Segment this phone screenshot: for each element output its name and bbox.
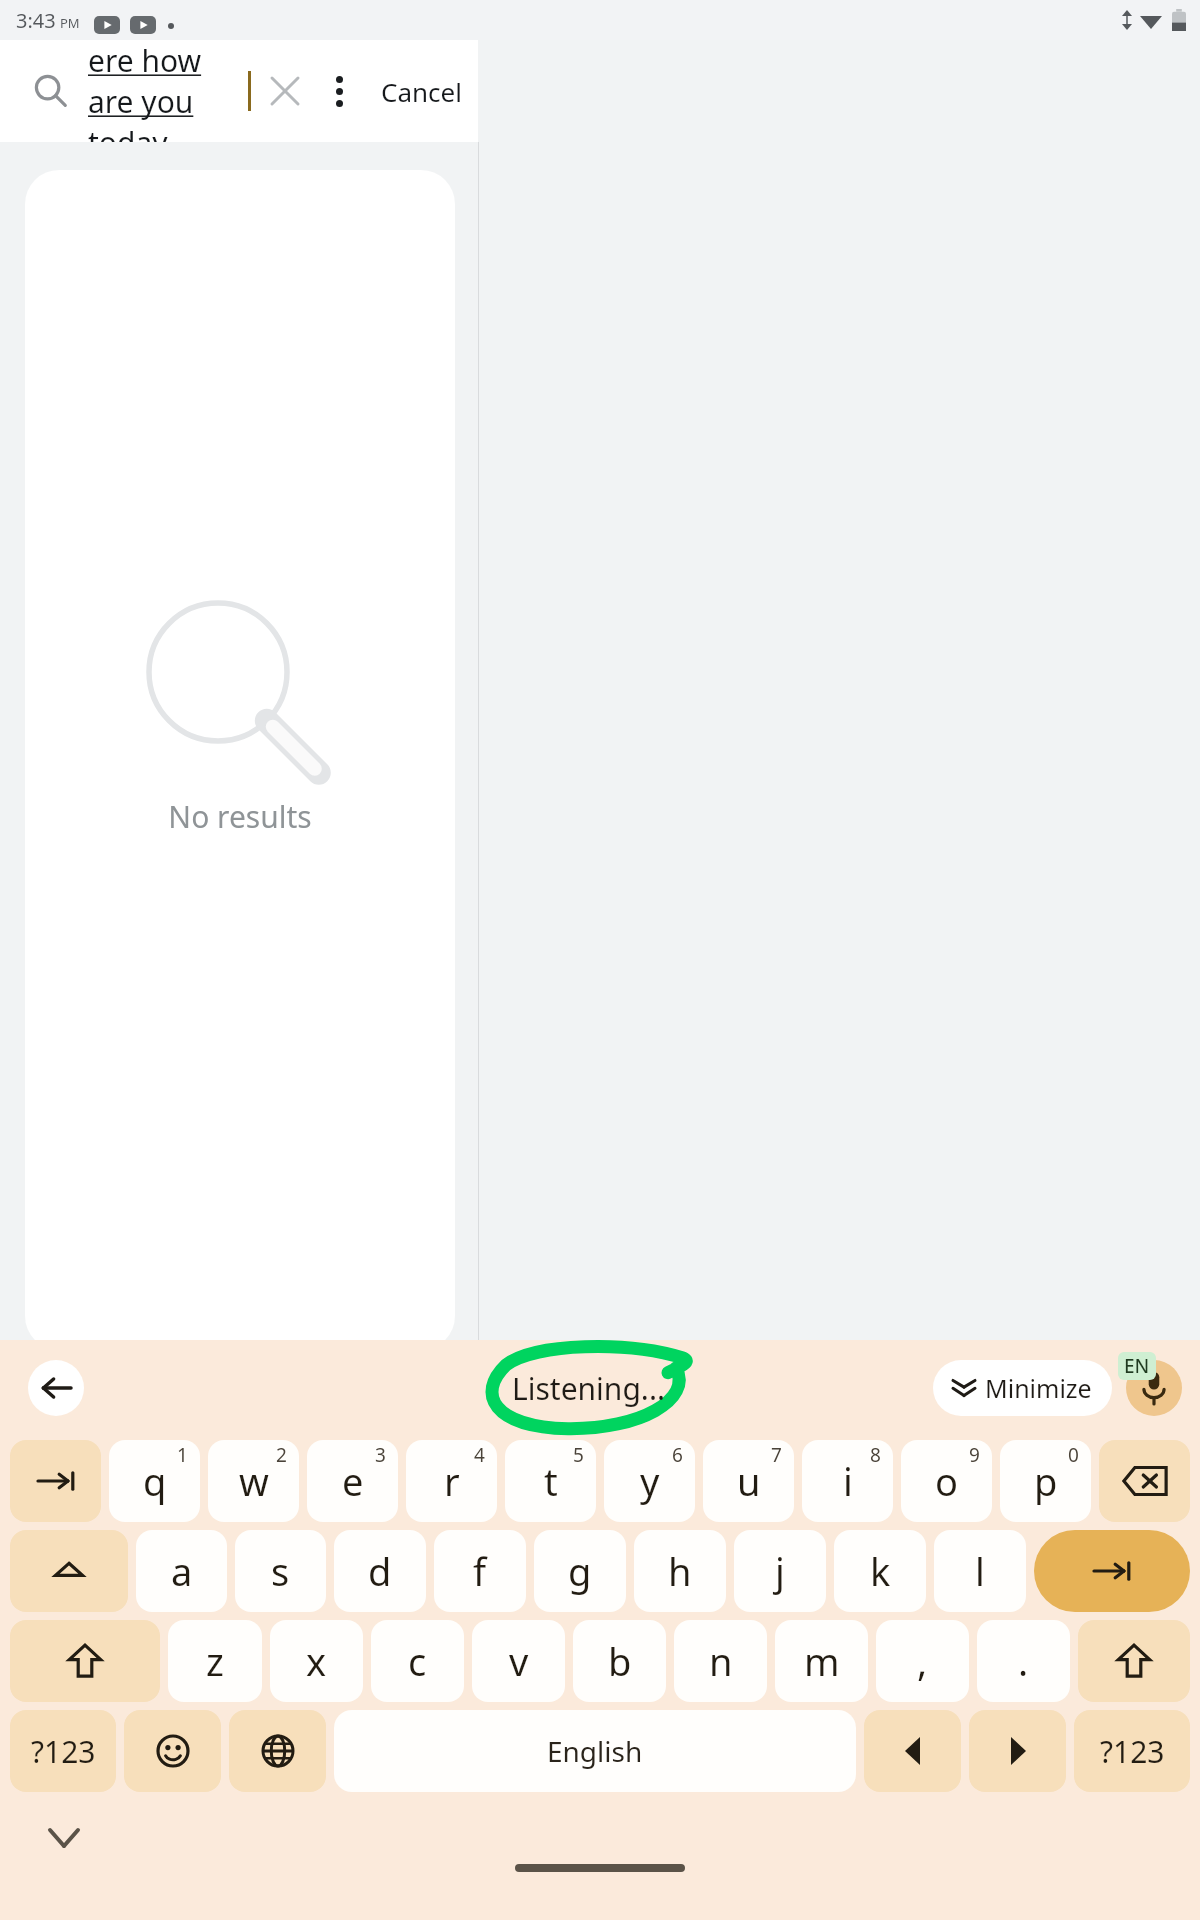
staticText: v (509, 1635, 529, 1687)
staticText: . (1018, 1635, 1029, 1687)
button[interactable]: z (168, 1620, 262, 1702)
button[interactable]: j (734, 1530, 826, 1612)
button[interactable]: i (802, 1440, 893, 1522)
staticText: No results (168, 796, 312, 837)
staticText: c (408, 1635, 427, 1687)
staticText: 4 (474, 1442, 485, 1468)
button[interactable]: Move cursor right (969, 1710, 1066, 1792)
button[interactable]: Change language (229, 1710, 326, 1792)
button[interactable]: Emoji (124, 1710, 221, 1792)
button[interactable]: n (674, 1620, 767, 1702)
button[interactable]: c (371, 1620, 464, 1702)
button[interactable]: p (1000, 1440, 1091, 1522)
button[interactable]: b (573, 1620, 666, 1702)
staticText: ?123 (31, 1731, 96, 1772)
staticText: y (640, 1455, 660, 1507)
staticText: Listening... (512, 1368, 665, 1409)
button[interactable]: Listening... (463, 1340, 713, 1436)
staticText: p (1034, 1455, 1058, 1507)
staticText: 6 (672, 1442, 683, 1468)
button[interactable]: l (934, 1530, 1026, 1612)
staticText: s (271, 1545, 290, 1597)
staticText: 2 (276, 1442, 287, 1468)
staticText: f (473, 1545, 487, 1597)
staticText: g (568, 1545, 592, 1597)
button[interactable]: Cancel (375, 66, 468, 117)
button[interactable]: Move cursor left (864, 1710, 961, 1792)
staticText: 8 (870, 1442, 881, 1468)
staticText: , (917, 1635, 928, 1687)
button[interactable]: Clear text (263, 69, 307, 113)
button[interactable]: v (472, 1620, 565, 1702)
button[interactable]: f (434, 1530, 526, 1612)
staticText: z (206, 1635, 224, 1687)
button[interactable]: e (307, 1440, 398, 1522)
staticText: English (547, 1732, 643, 1770)
staticText: b (608, 1635, 632, 1687)
staticText: q (143, 1455, 167, 1507)
button[interactable]: Minimize (933, 1360, 1112, 1416)
button[interactable]: , (876, 1620, 969, 1702)
staticText: ere how are you today (88, 40, 248, 142)
button[interactable]: Caps lock (10, 1530, 128, 1612)
button[interactable]: Back (28, 1360, 84, 1416)
button[interactable]: s (235, 1530, 326, 1612)
button[interactable]: . (977, 1620, 1070, 1702)
button[interactable]: u (703, 1440, 794, 1522)
button[interactable]: Shift (10, 1620, 160, 1702)
staticText: PM (60, 14, 80, 32)
staticText: 5 (573, 1442, 584, 1468)
button[interactable]: o (901, 1440, 992, 1522)
staticText: r (444, 1455, 460, 1507)
staticText: x (306, 1635, 327, 1687)
staticText: 9 (969, 1442, 980, 1468)
staticText: ?123 (1100, 1731, 1165, 1772)
staticText: k (870, 1545, 891, 1597)
staticText: EN (1124, 1353, 1150, 1379)
button[interactable]: y (604, 1440, 695, 1522)
staticText: d (368, 1545, 392, 1597)
button[interactable]: x (270, 1620, 363, 1702)
staticText: w (239, 1455, 269, 1507)
button[interactable]: Microphone (1126, 1360, 1182, 1416)
button[interactable]: a (136, 1530, 227, 1612)
button[interactable]: r (406, 1440, 497, 1522)
staticText: a (171, 1545, 193, 1597)
staticText: 1 (177, 1442, 188, 1468)
button[interactable]: g (534, 1530, 626, 1612)
button[interactable]: h (634, 1530, 726, 1612)
staticText: 7 (771, 1442, 782, 1468)
staticText: h (668, 1545, 692, 1597)
staticText: m (804, 1635, 840, 1687)
button[interactable]: ?123 (10, 1710, 116, 1792)
staticText: u (737, 1455, 761, 1507)
staticText: o (935, 1455, 958, 1507)
button[interactable]: d (334, 1530, 426, 1612)
button[interactable]: Enter (1034, 1530, 1190, 1612)
button[interactable]: Backspace (1099, 1440, 1190, 1522)
button[interactable]: Hide keyboard (40, 1814, 88, 1862)
button[interactable]: Search (28, 68, 74, 114)
button[interactable]: More options (315, 67, 363, 115)
staticText: j (775, 1545, 785, 1597)
button[interactable]: Shift (1078, 1620, 1190, 1702)
button[interactable]: w (208, 1440, 299, 1522)
staticText: e (342, 1455, 364, 1507)
button[interactable]: q (109, 1440, 200, 1522)
staticText: 3:43 (16, 7, 56, 34)
staticText: t (544, 1455, 558, 1507)
button[interactable]: k (834, 1530, 926, 1612)
staticText: Cancel (381, 74, 462, 109)
button[interactable]: English (334, 1710, 856, 1792)
staticText: i (843, 1455, 853, 1507)
staticText: 3 (375, 1442, 386, 1468)
staticText: Minimize (985, 1371, 1092, 1405)
button[interactable]: m (775, 1620, 868, 1702)
button[interactable]: Tab (10, 1440, 101, 1522)
staticText: 0 (1068, 1442, 1079, 1468)
staticText: l (975, 1545, 985, 1597)
staticText: n (709, 1635, 733, 1687)
button[interactable]: ?123 (1074, 1710, 1190, 1792)
button[interactable]: t (505, 1440, 596, 1522)
